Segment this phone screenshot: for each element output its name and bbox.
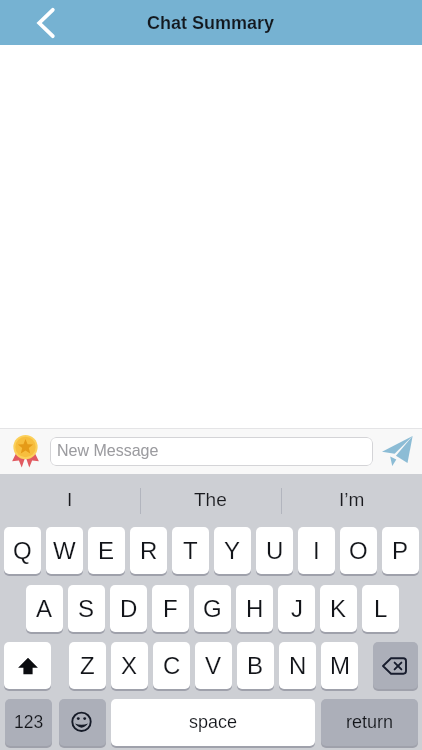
button[interactable]: Emoji xyxy=(59,699,106,746)
staticText: The xyxy=(194,489,227,510)
staticText: U xyxy=(266,537,284,564)
staticText: P xyxy=(392,537,409,564)
staticText: J xyxy=(291,595,303,622)
button[interactable]: U xyxy=(256,527,293,574)
button[interactable]: I xyxy=(0,474,140,518)
button[interactable]: D xyxy=(110,585,147,632)
button[interactable]: G xyxy=(194,585,231,632)
staticText: Q xyxy=(13,537,32,564)
staticText: N xyxy=(289,652,307,679)
button[interactable]: E xyxy=(88,527,125,574)
staticText: W xyxy=(53,537,76,564)
staticText: O xyxy=(349,537,368,564)
button[interactable]: Q xyxy=(4,527,41,574)
staticText: I’m xyxy=(339,489,365,510)
button[interactable]: J xyxy=(278,585,315,632)
button[interactable]: C xyxy=(153,642,190,689)
staticText: Chat Summary xyxy=(147,13,275,33)
staticText: I xyxy=(313,537,320,564)
button[interactable]: Send xyxy=(381,434,415,468)
button[interactable]: V xyxy=(195,642,232,689)
staticText: return xyxy=(346,712,394,732)
staticText: R xyxy=(140,537,158,564)
staticText: C xyxy=(163,652,181,679)
button[interactable]: T xyxy=(172,527,209,574)
staticText: T xyxy=(183,537,198,564)
button[interactable]: I xyxy=(298,527,335,574)
staticText: space xyxy=(189,712,238,732)
staticText: I xyxy=(67,489,73,510)
button[interactable]: H xyxy=(236,585,273,632)
staticText: F xyxy=(163,595,178,622)
button[interactable]: S xyxy=(68,585,105,632)
staticText: V xyxy=(205,652,222,679)
button[interactable]: return xyxy=(321,699,418,746)
button[interactable]: Back xyxy=(26,3,66,43)
button[interactable]: P xyxy=(382,527,419,574)
staticText: E xyxy=(98,537,115,564)
staticText: L xyxy=(374,595,388,622)
button[interactable]: M xyxy=(321,642,358,689)
button[interactable]: R xyxy=(130,527,167,574)
button[interactable]: Backspace xyxy=(373,642,418,689)
staticText: Z xyxy=(80,652,95,679)
button[interactable]: N xyxy=(279,642,316,689)
staticText: 123 xyxy=(14,712,44,732)
button[interactable]: Shift xyxy=(4,642,51,689)
button[interactable]: K xyxy=(320,585,357,632)
staticText: G xyxy=(203,595,222,622)
staticText: M xyxy=(330,652,350,679)
staticText: New Message xyxy=(57,442,159,460)
button[interactable]: 123 xyxy=(5,699,52,746)
button[interactable]: X xyxy=(111,642,148,689)
staticText: S xyxy=(78,595,95,622)
button[interactable]: L xyxy=(362,585,399,632)
staticText: X xyxy=(121,652,138,679)
button[interactable]: I’m xyxy=(281,474,422,518)
button[interactable]: A xyxy=(26,585,63,632)
button[interactable]: New Message xyxy=(50,437,373,466)
button[interactable]: F xyxy=(152,585,189,632)
staticText: D xyxy=(120,595,138,622)
button[interactable]: B xyxy=(237,642,274,689)
staticText: B xyxy=(247,652,264,679)
button[interactable]: space xyxy=(111,699,315,746)
button[interactable]: Award xyxy=(12,435,39,468)
button[interactable]: O xyxy=(340,527,377,574)
staticText: K xyxy=(330,595,347,622)
button[interactable]: Y xyxy=(214,527,251,574)
staticText: H xyxy=(246,595,264,622)
staticText: A xyxy=(36,595,53,622)
button[interactable]: Z xyxy=(69,642,106,689)
staticText: Y xyxy=(224,537,241,564)
button[interactable]: W xyxy=(46,527,83,574)
button[interactable]: The xyxy=(140,474,281,518)
